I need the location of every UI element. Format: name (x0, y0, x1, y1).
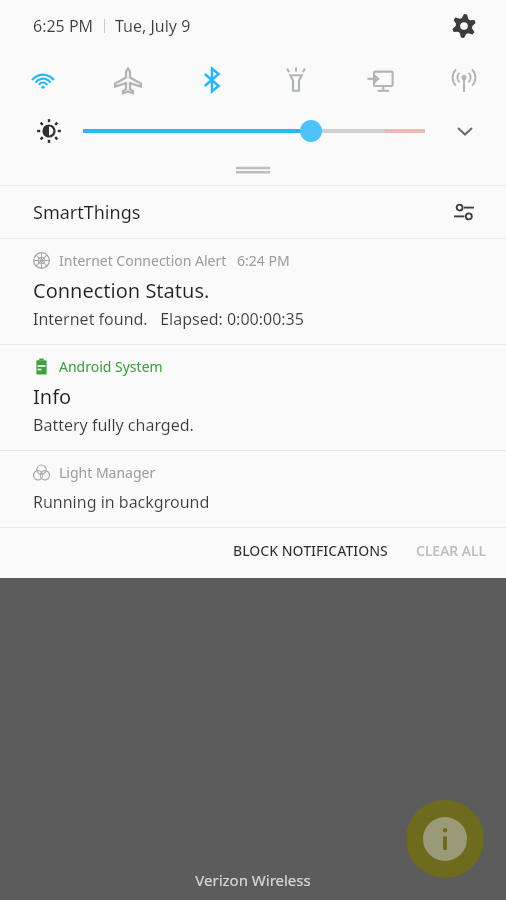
button[interactable]: Brightness slider (0, 107, 506, 155)
staticText: BLOCK NOTIFICATIONS (233, 541, 388, 560)
button[interactable]: Airplane mode (85, 52, 170, 107)
button[interactable]: Brightness (34, 116, 64, 146)
staticText: 6:25 PM (33, 15, 94, 37)
button[interactable]: Internet Connection Alert (0, 239, 506, 344)
button[interactable]: BLOCK NOTIFICATIONS (219, 531, 402, 570)
staticText: Android System (59, 357, 163, 376)
button[interactable]: Android System (0, 345, 506, 450)
staticText: SmartThings (33, 200, 141, 225)
staticText: Verizon Wireless (0, 870, 506, 890)
button[interactable]: Info (406, 800, 484, 878)
staticText: Running in background (33, 491, 210, 513)
button[interactable]: SmartThings (0, 186, 506, 238)
button[interactable]: Settings (444, 6, 484, 46)
staticText: Internet Connection Alert (59, 251, 227, 270)
staticText: CLEAR ALL (416, 541, 486, 560)
button[interactable]: Wi-Fi (0, 52, 85, 107)
staticText: Tue, July 9 (115, 15, 191, 37)
button[interactable]: Expand (448, 114, 482, 148)
staticText: Light Manager (59, 463, 156, 482)
staticText: 6:24 PM (237, 251, 290, 270)
button[interactable]: Flashlight (254, 52, 338, 107)
staticText: Internet found. Elapsed: 0:00:00:35 (33, 308, 304, 330)
button[interactable]: Light Manager (0, 451, 506, 527)
staticText: Connection Status. (33, 277, 210, 304)
button[interactable]: CLEAR ALL (402, 531, 506, 570)
button[interactable]: SmartThings settings (446, 194, 482, 230)
button[interactable]: Smart View (338, 52, 422, 107)
button[interactable]: Bluetooth (170, 52, 254, 107)
staticText: Battery fully charged. (33, 414, 194, 436)
button[interactable]: Mobile hotspot (422, 52, 506, 107)
staticText: Info (33, 383, 72, 410)
